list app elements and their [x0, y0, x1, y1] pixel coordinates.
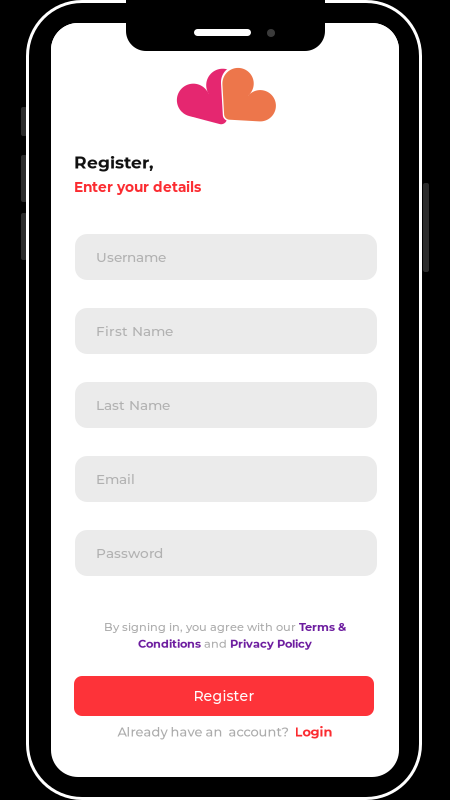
staticText: and: [201, 637, 230, 651]
staticText: Register: [193, 687, 254, 705]
button[interactable]: Privacy Policy: [230, 637, 312, 651]
button[interactable]: Last Name: [75, 382, 377, 428]
staticText: Password: [96, 545, 163, 561]
staticText: Privacy Policy: [230, 637, 312, 651]
staticText: Last Name: [96, 397, 170, 413]
button[interactable]: Terms &: [299, 620, 346, 634]
button[interactable]: Register: [74, 676, 374, 716]
staticText: Already have an account?: [117, 724, 294, 740]
staticText: By signing in, you agree with our: [104, 620, 299, 634]
staticText: First Name: [96, 323, 173, 339]
staticText: Terms &: [299, 620, 346, 634]
button[interactable]: Email: [75, 456, 377, 502]
button[interactable]: Password: [75, 530, 377, 576]
button[interactable]: First Name: [75, 308, 377, 354]
button[interactable]: Conditions: [138, 637, 201, 651]
staticText: Enter your details: [74, 179, 201, 195]
button[interactable]: Login: [294, 724, 332, 740]
staticText: Username: [96, 249, 166, 265]
staticText: Email: [96, 471, 135, 487]
staticText: Register,: [74, 152, 153, 173]
button[interactable]: Username: [75, 234, 377, 280]
staticText: Login: [294, 724, 332, 740]
staticText: Conditions: [138, 637, 201, 651]
